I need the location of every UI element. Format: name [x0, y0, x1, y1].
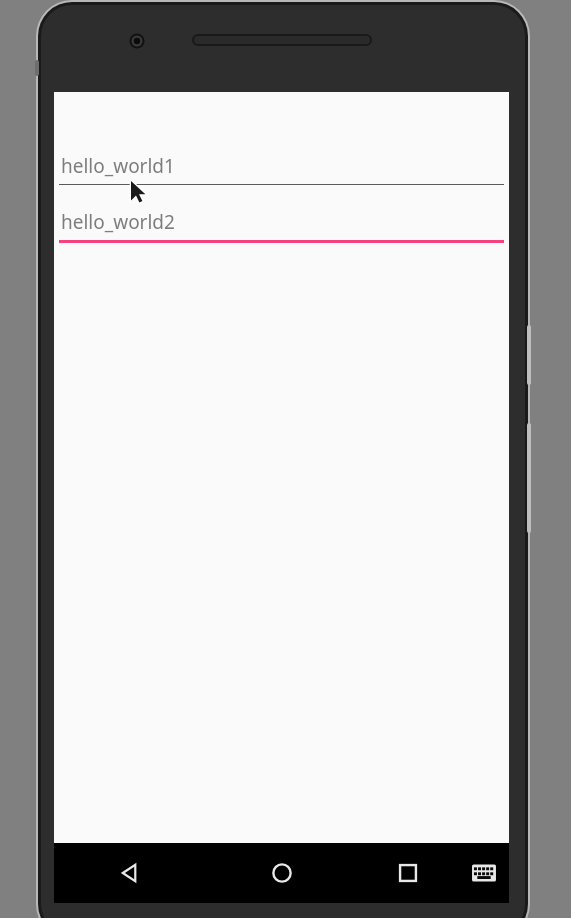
button[interactable]: hello_world1: [59, 148, 504, 185]
staticText: hello_world1: [61, 153, 175, 179]
button[interactable]: Home: [206, 843, 358, 903]
button[interactable]: Back: [54, 843, 206, 903]
staticText: hello_world2: [61, 209, 175, 235]
button[interactable]: Switch keyboard: [458, 843, 509, 903]
button[interactable]: hello_world2: [59, 204, 504, 243]
button[interactable]: Recent apps: [358, 843, 458, 903]
